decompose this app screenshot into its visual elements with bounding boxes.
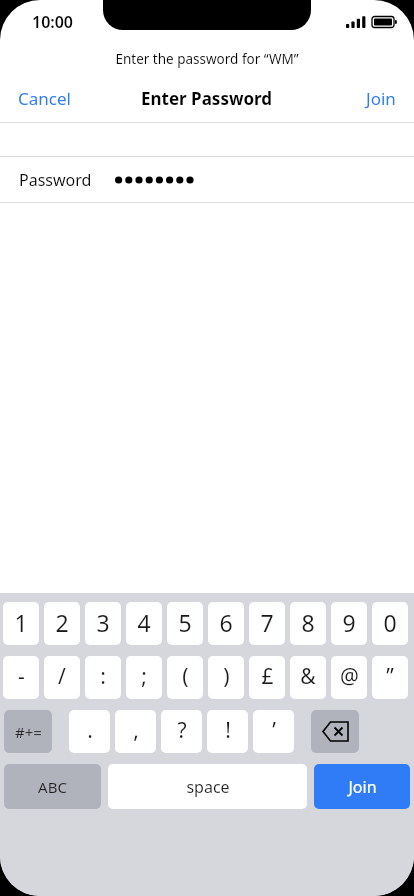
button[interactable]: Password [0,157,414,202]
staticText: ( [182,662,189,691]
button[interactable]: , [115,710,156,753]
button[interactable]: ” [372,656,408,699]
button[interactable]: 8 [290,602,326,645]
staticText: / [58,662,66,691]
staticText: space [186,776,230,798]
staticText: ? [177,716,187,745]
button[interactable]: 9 [331,602,367,645]
staticText: Cancel [18,87,71,110]
staticText: , [133,716,139,745]
staticText: Password [19,169,92,191]
button[interactable]: Join [348,79,414,118]
button[interactable]: ) [208,656,244,699]
staticText: Enter the password for “WM” [115,50,299,68]
staticText: Enter Password [141,87,273,110]
staticText: £ [261,662,274,691]
staticText: ’ [272,716,276,745]
button[interactable]: Join [314,764,410,809]
staticText: & [300,662,316,691]
button[interactable]: 2 [44,602,80,645]
staticText: 0 [383,607,397,638]
button[interactable]: £ [249,656,285,699]
staticText: 10:00 [32,11,74,33]
staticText: ) [223,662,230,691]
button[interactable]: Cancel [0,79,89,118]
button[interactable]: : [85,656,121,699]
staticText: 3 [96,607,110,638]
button[interactable]: ABC [4,764,101,809]
button[interactable]: ? [161,710,202,753]
button[interactable]: ; [126,656,162,699]
staticText: : [100,662,106,691]
button[interactable]: & [290,656,326,699]
button[interactable]: 0 [372,602,408,645]
button[interactable]: 7 [249,602,285,645]
button[interactable]: ! [207,710,248,753]
button[interactable]: - [3,656,39,699]
button[interactable]: #+= [4,710,52,753]
button[interactable]: 3 [85,602,121,645]
staticText: - [18,662,25,691]
button[interactable]: @ [331,656,367,699]
button[interactable]: ’ [253,710,294,753]
staticText: #+= [15,722,42,742]
staticText: 1 [14,607,28,638]
button[interactable]: 6 [208,602,244,645]
staticText: Join [348,776,377,798]
button[interactable]: 4 [126,602,162,645]
staticText: Join [366,87,396,110]
button[interactable]: Delete [311,710,359,753]
staticText: 6 [219,607,233,638]
button[interactable]: 5 [167,602,203,645]
button[interactable]: space [108,764,307,809]
staticText: ; [141,662,147,691]
staticText: . [87,716,93,745]
button[interactable]: / [44,656,80,699]
staticText: ABC [38,777,67,797]
staticText: 7 [260,607,274,638]
staticText: 5 [178,607,192,638]
staticText: 4 [137,607,151,638]
staticText: ” [386,662,394,691]
staticText: 8 [301,607,315,638]
staticText: 2 [55,607,69,638]
staticText: @ [340,662,359,691]
staticText: ! [225,716,231,745]
staticText: 9 [342,607,356,638]
button[interactable]: 1 [3,602,39,645]
button[interactable]: . [69,710,110,753]
button[interactable]: ( [167,656,203,699]
